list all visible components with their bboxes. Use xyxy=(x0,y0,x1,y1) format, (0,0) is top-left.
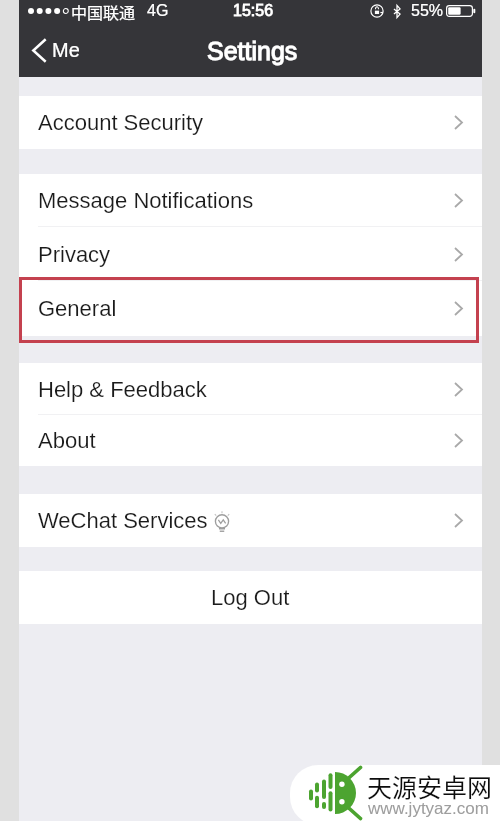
staticText: Log Out xyxy=(211,585,290,610)
staticText: About xyxy=(38,428,96,453)
button[interactable]: Privacy xyxy=(19,227,482,281)
staticText: WeChat Services xyxy=(38,508,208,533)
staticText: 55% xyxy=(411,2,444,20)
staticText: 15:56 xyxy=(233,2,274,20)
button[interactable]: Back to Me xyxy=(32,21,80,77)
staticText: Me xyxy=(52,39,80,61)
button[interactable]: Log Out xyxy=(19,571,482,624)
staticText: 天源安卓网 xyxy=(367,768,493,804)
staticText: www.jytyaz.com xyxy=(368,799,489,818)
staticText: Privacy xyxy=(38,242,111,267)
staticText: 4G xyxy=(147,2,169,20)
button[interactable]: Help & Feedback xyxy=(19,363,482,415)
staticText: 中国联通 xyxy=(71,0,136,21)
staticText: Help & Feedback xyxy=(38,377,207,402)
button[interactable]: General xyxy=(19,281,482,336)
button[interactable]: About xyxy=(19,415,482,466)
button[interactable]: WeChat Services xyxy=(19,494,482,547)
button[interactable]: Message Notifications xyxy=(19,174,482,227)
staticText: Settings xyxy=(207,37,298,65)
button[interactable]: Account Security xyxy=(19,96,482,149)
staticText: Account Security xyxy=(38,110,204,135)
staticText: Message Notifications xyxy=(38,188,254,213)
staticText: General xyxy=(38,296,117,321)
